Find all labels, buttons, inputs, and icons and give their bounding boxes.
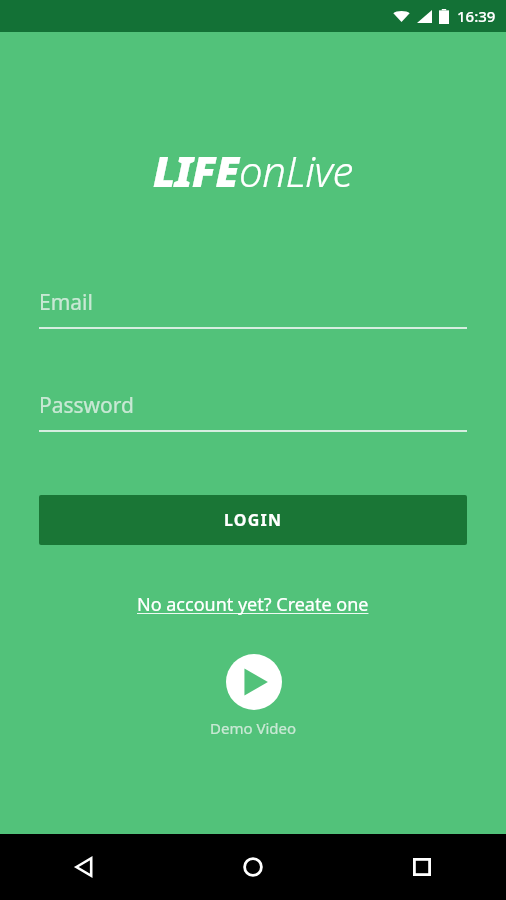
staticText: Email <box>39 288 93 317</box>
staticText: 16:39 <box>457 6 496 26</box>
staticText: LOGIN <box>224 509 283 531</box>
button[interactable]: Email <box>39 288 467 329</box>
button[interactable]: Back <box>0 834 168 900</box>
button[interactable]: No account yet? Create one <box>131 588 375 621</box>
button[interactable]: LOGIN <box>39 495 467 545</box>
staticText: onLive <box>239 142 353 199</box>
staticText: LIFE <box>153 142 239 199</box>
staticText: Password <box>39 391 134 420</box>
button[interactable]: Password <box>39 391 467 432</box>
staticText: No account yet? Create one <box>137 592 369 617</box>
button[interactable]: Play demo video <box>210 654 297 738</box>
button[interactable]: Recent apps <box>337 834 506 900</box>
staticText: Demo Video <box>210 718 297 738</box>
button[interactable]: Home <box>168 834 337 900</box>
